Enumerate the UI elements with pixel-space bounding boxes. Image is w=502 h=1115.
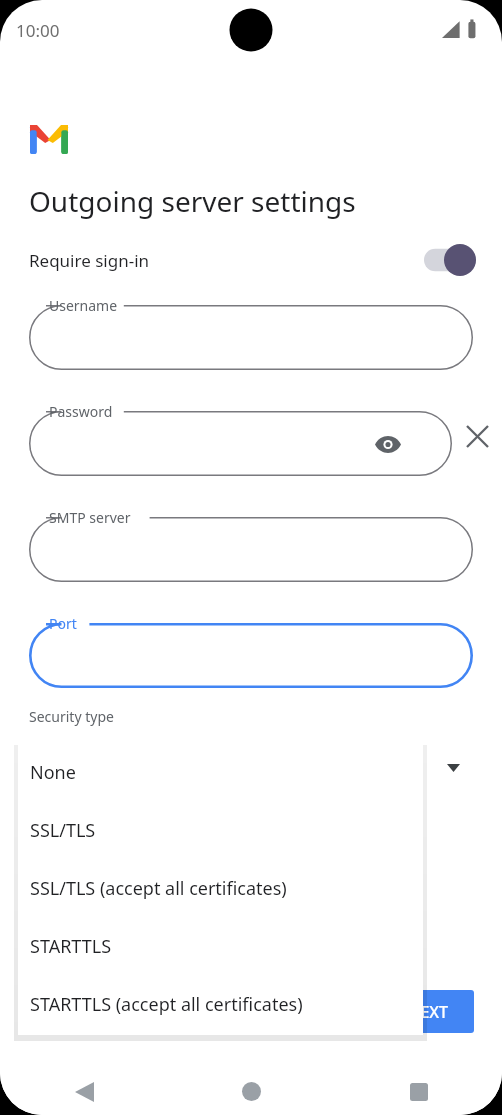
button[interactable]: Clear password [452,404,502,469]
staticText: 10:00 [16,19,60,42]
button[interactable]: SMTP server [29,503,473,582]
staticText: Port [49,614,77,633]
button[interactable]: SSL/TLS [18,801,423,859]
button[interactable]: Require sign-in [0,240,502,280]
staticText: SSL/TLS (accept all certificates) [30,876,287,901]
staticText: SMTP server [49,508,131,527]
button[interactable]: SSL/TLS (accept all certificates) [18,859,423,917]
button[interactable]: Security type [0,707,502,726]
staticText: STARTTLS [30,934,112,959]
staticText: Username [49,296,118,315]
staticText: Outgoing server settings [29,182,356,220]
staticText: None [30,760,76,785]
button[interactable]: None [18,743,423,801]
button[interactable]: STARTTLS [18,917,423,975]
staticText: Require sign-in [29,249,150,272]
staticText: Password [49,402,113,421]
staticText: Security type [29,707,114,726]
button[interactable]: Username [29,291,473,370]
button[interactable]: Port [29,609,473,688]
button[interactable]: STARTTLS (accept all certificates) [18,975,423,1033]
staticText: STARTTLS (accept all certificates) [30,992,303,1017]
button[interactable]: Password [29,397,452,476]
button[interactable]: Recent apps [335,1068,502,1115]
staticText: NEXT [408,1001,449,1023]
button[interactable]: Home [168,1068,335,1115]
staticText: SSL/TLS [30,818,96,843]
button[interactable]: NEXT [383,990,474,1033]
button[interactable]: Security type dropdown [440,755,466,781]
button[interactable]: Show password [368,424,408,464]
button[interactable]: Back [0,1068,168,1115]
